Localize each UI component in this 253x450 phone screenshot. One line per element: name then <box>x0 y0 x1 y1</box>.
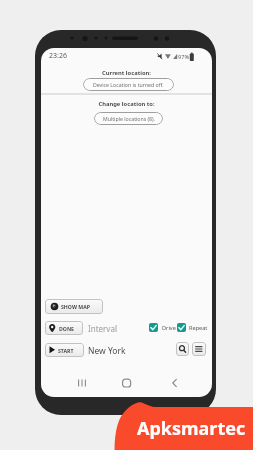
button[interactable]: Apksmartec <box>114 407 253 450</box>
button[interactable] <box>192 342 206 356</box>
staticText: Interval <box>88 323 117 334</box>
button[interactable] <box>176 342 189 356</box>
staticText: Multiple locations (8). <box>103 115 155 122</box>
button[interactable]: Multiple locations (8). <box>94 112 163 125</box>
staticText: Repeat <box>189 324 208 332</box>
button[interactable] <box>149 323 158 332</box>
staticText: 97% <box>178 53 190 61</box>
button[interactable]: START <box>45 343 84 357</box>
button[interactable]: Device Location is turned off. <box>83 78 174 91</box>
staticText: DONE <box>59 325 75 332</box>
staticText: 23:26 <box>49 51 67 61</box>
button[interactable]: SHOW MAP <box>45 299 103 314</box>
staticText: Change location to: <box>41 100 212 108</box>
button[interactable]: DONE <box>45 321 83 335</box>
staticText: Drive <box>162 324 176 332</box>
staticText: START <box>58 347 74 354</box>
staticText: Current location: <box>41 69 212 77</box>
staticText: Apksmartec <box>137 416 246 441</box>
staticText: Device Location is turned off. <box>93 81 164 88</box>
staticText: New York <box>88 345 126 357</box>
button[interactable] <box>177 323 186 332</box>
staticText: SHOW MAP <box>61 303 90 310</box>
